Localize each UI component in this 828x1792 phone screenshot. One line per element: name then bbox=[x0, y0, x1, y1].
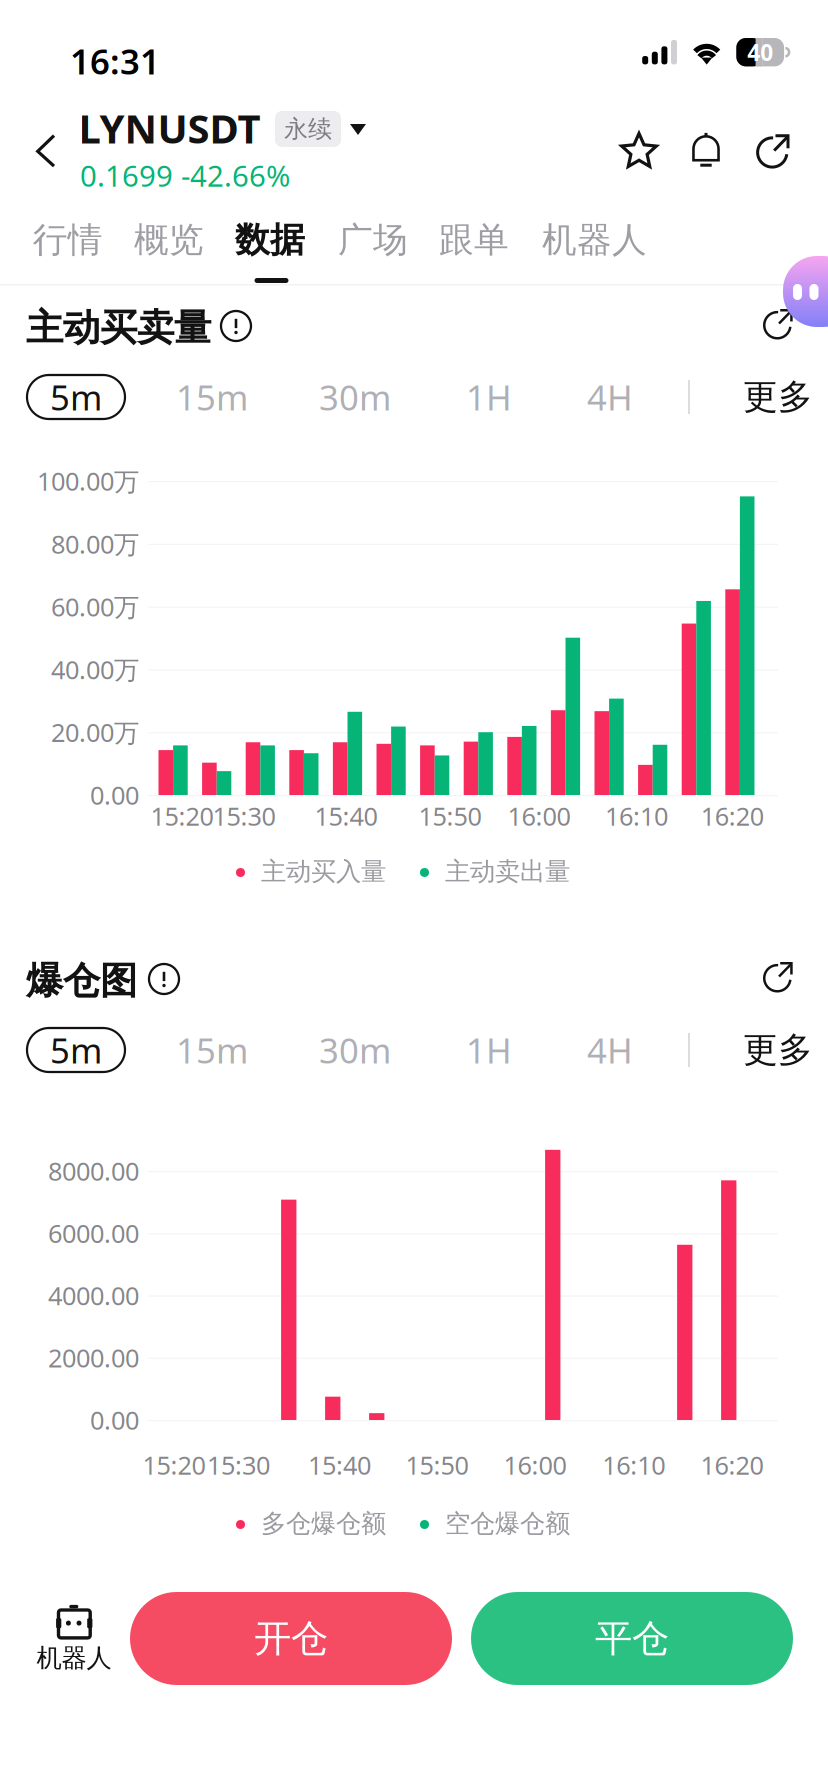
button[interactable]: Back bbox=[15, 120, 77, 182]
staticText: 主动买入量 bbox=[261, 856, 386, 887]
staticText: 机器人 bbox=[36, 1642, 111, 1673]
button[interactable]: 平仓 bbox=[471, 1592, 793, 1685]
staticText: 80.00万 bbox=[51, 527, 139, 561]
staticText: 多仓爆仓额 bbox=[261, 1508, 386, 1539]
button[interactable]: Price alert bbox=[677, 121, 735, 179]
staticText: 数据 bbox=[235, 219, 305, 261]
staticText: 0.00 bbox=[90, 778, 139, 812]
staticText: 0.00 bbox=[90, 1403, 139, 1437]
staticText: LYNUSDT bbox=[79, 101, 261, 154]
staticText: 更多 bbox=[743, 376, 813, 418]
staticText: 爆仓图 bbox=[26, 958, 137, 1004]
staticText: 5m bbox=[50, 374, 102, 420]
button[interactable]: Expand 主动买卖量 bbox=[752, 297, 804, 349]
staticText: 15:20 bbox=[142, 1448, 205, 1482]
staticText: 平仓 bbox=[595, 1616, 669, 1661]
staticText: 15:50 bbox=[418, 799, 481, 833]
staticText: 15:50 bbox=[405, 1448, 468, 1482]
button[interactable]: 4H bbox=[555, 1028, 665, 1072]
button[interactable]: 行情 bbox=[23, 204, 113, 276]
button[interactable]: Share bbox=[744, 121, 802, 179]
staticText: 8000.00 bbox=[48, 1154, 139, 1188]
staticText: 0.1699 -42.66% bbox=[80, 156, 290, 195]
button[interactable]: 5m bbox=[27, 1028, 125, 1072]
staticText: 16:10 bbox=[605, 799, 668, 833]
staticText: 100.00万 bbox=[37, 464, 139, 498]
staticText: 1H bbox=[466, 374, 512, 420]
staticText: 16:10 bbox=[602, 1448, 665, 1482]
button[interactable]: 5m bbox=[27, 375, 125, 419]
button[interactable]: 1H bbox=[434, 375, 544, 419]
staticText: 15:30 bbox=[207, 1448, 270, 1482]
button[interactable]: 机器人 bbox=[532, 204, 657, 276]
staticText: 15m bbox=[176, 1027, 248, 1073]
staticText: 4H bbox=[587, 1027, 633, 1073]
staticText: 永续 bbox=[284, 114, 332, 144]
staticText: 主动买卖量 bbox=[26, 305, 211, 351]
staticText: 4H bbox=[587, 374, 633, 420]
button[interactable]: 广场 bbox=[328, 204, 418, 276]
staticText: 5m bbox=[50, 1027, 102, 1073]
staticText: 30m bbox=[319, 1027, 391, 1073]
staticText: 16:00 bbox=[503, 1448, 566, 1482]
staticText: 15:30 bbox=[212, 799, 275, 833]
button[interactable]: 开仓 bbox=[130, 1592, 452, 1685]
staticText: 2000.00 bbox=[48, 1341, 139, 1374]
staticText: 60.00万 bbox=[51, 590, 139, 623]
staticText: 概览 bbox=[134, 219, 204, 261]
staticText: 空仓爆仓额 bbox=[445, 1508, 570, 1539]
staticText: 广场 bbox=[338, 219, 408, 261]
staticText: 15:40 bbox=[308, 1448, 371, 1482]
staticText: 15:40 bbox=[314, 799, 377, 833]
staticText: 40 bbox=[747, 37, 773, 67]
staticText: 机器人 bbox=[542, 219, 647, 261]
button[interactable]: 4H bbox=[555, 375, 665, 419]
staticText: 跟单 bbox=[439, 219, 509, 261]
staticText: 开仓 bbox=[254, 1616, 328, 1661]
staticText: 30m bbox=[319, 374, 391, 420]
staticText: 40.00万 bbox=[51, 653, 139, 686]
button[interactable]: 30m bbox=[300, 1028, 410, 1072]
staticText: 主动卖出量 bbox=[445, 856, 570, 887]
staticText: 20.00万 bbox=[51, 715, 139, 749]
staticText: 6000.00 bbox=[48, 1216, 139, 1250]
button[interactable]: 15m bbox=[157, 375, 267, 419]
button[interactable]: 机器人 bbox=[16, 1588, 132, 1684]
button[interactable]: 更多 bbox=[733, 375, 823, 419]
button[interactable]: 更多 bbox=[733, 1028, 823, 1072]
staticText: 16:20 bbox=[701, 799, 764, 833]
staticText: 16:20 bbox=[701, 1448, 764, 1482]
staticText: 16:31 bbox=[70, 38, 160, 84]
staticText: 行情 bbox=[33, 219, 103, 261]
button[interactable]: Expand 爆仓图 bbox=[752, 950, 804, 1002]
staticText: 4000.00 bbox=[48, 1279, 139, 1312]
staticText: 15m bbox=[176, 374, 248, 420]
staticText: 16:00 bbox=[507, 799, 570, 833]
button[interactable]: 跟单 bbox=[429, 204, 519, 276]
staticText: 1H bbox=[466, 1027, 512, 1073]
button[interactable]: 30m bbox=[300, 375, 410, 419]
staticText: 更多 bbox=[743, 1029, 813, 1071]
button[interactable]: 数据 bbox=[225, 204, 315, 276]
staticText: 15:20 bbox=[150, 799, 213, 833]
button[interactable]: Favourite bbox=[610, 121, 668, 179]
button[interactable]: 1H bbox=[434, 1028, 544, 1072]
button[interactable]: 15m bbox=[157, 1028, 267, 1072]
button[interactable]: 概览 bbox=[124, 204, 214, 276]
